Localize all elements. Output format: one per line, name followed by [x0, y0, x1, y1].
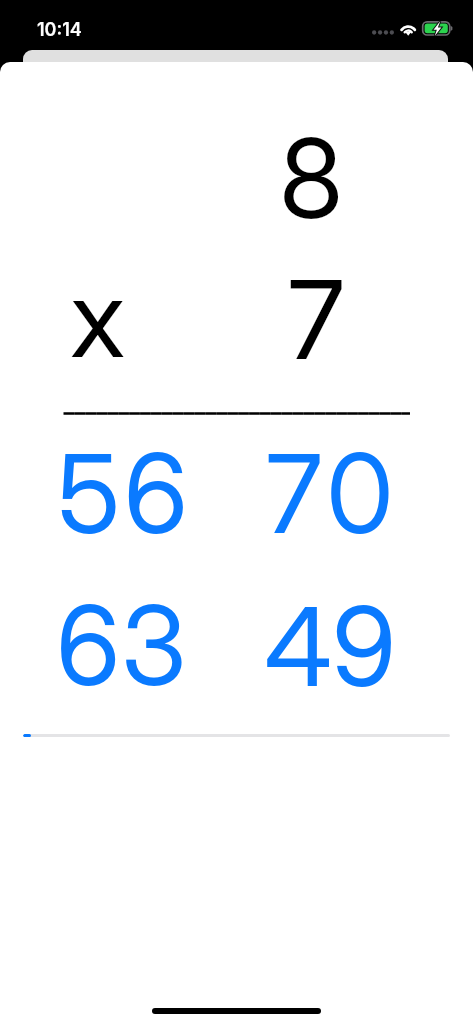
staticText: 49	[263, 580, 395, 700]
other: Battery charging	[421, 20, 453, 38]
button[interactable]: 70	[236, 440, 436, 560]
button[interactable]: 56	[30, 440, 230, 560]
staticText: 70	[259, 427, 391, 547]
staticText: 56	[55, 427, 187, 547]
button[interactable]: 49	[236, 592, 436, 712]
staticText: 8	[276, 112, 347, 244]
button[interactable]: Quiz progress	[23, 726, 450, 744]
staticText: 7	[281, 253, 352, 385]
other: Cellular signal	[372, 29, 395, 36]
button[interactable]: 63	[30, 592, 230, 712]
staticText: 63	[53, 579, 185, 699]
staticText: 10:14	[37, 19, 82, 41]
staticText: x	[70, 251, 126, 383]
other: Wi-Fi	[399, 20, 419, 36]
